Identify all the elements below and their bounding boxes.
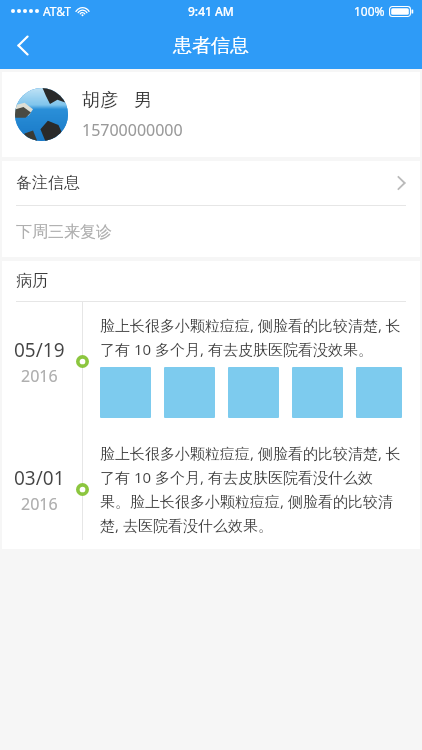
button[interactable]: 05/19: [2, 302, 420, 430]
staticText: 胡彦: [82, 89, 118, 112]
staticText: 脸上长很多小颗粒痘痘, 侧脸看的比较清楚, 长了有 10 多个月, 有去皮肤医院…: [100, 443, 402, 536]
staticText: 病历: [16, 271, 48, 291]
staticText: AT&T: [43, 3, 71, 19]
staticText: 100%: [354, 3, 385, 19]
staticText: 2016: [21, 493, 58, 515]
button[interactable]: 胡彦: [2, 72, 420, 157]
staticText: 9:41 AM: [188, 3, 234, 19]
staticText: 05/19: [14, 337, 65, 363]
staticText: 男: [134, 89, 152, 112]
button[interactable]: Back: [0, 22, 46, 69]
staticText: 脸上长很多小颗粒痘痘, 侧脸看的比较清楚, 长了有 10 多个月, 有去皮肤医院…: [100, 315, 402, 360]
staticText: 2016: [21, 365, 58, 387]
staticText: 15700000000: [82, 119, 183, 141]
staticText: 备注信息: [16, 173, 80, 193]
button[interactable]: 03/01: [2, 430, 420, 549]
button[interactable]: 备注信息: [2, 161, 420, 205]
staticText: 下周三来复诊: [16, 222, 112, 242]
staticText: 患者信息: [173, 34, 249, 58]
staticText: 03/01: [14, 465, 65, 491]
